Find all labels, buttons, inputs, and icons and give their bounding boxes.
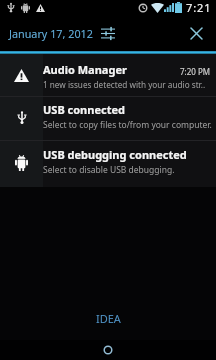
staticText: Audio Manager — [43, 62, 127, 77]
button[interactable]: USB debugging connected — [0, 141, 216, 187]
staticText: January 17, 2012 — [9, 26, 93, 41]
staticText: Select to copy files to/from your comput… — [43, 119, 214, 131]
button[interactable]: USB connected — [0, 97, 216, 140]
staticText: Select to disable USB debugging. — [43, 164, 214, 176]
button[interactable]: Home — [98, 340, 118, 360]
button[interactable]: Audio Manager — [0, 54, 216, 96]
staticText: USB debugging connected — [43, 147, 187, 162]
button[interactable]: Clear all notifications — [184, 21, 208, 45]
staticText: 1 new issues detected with your audio st… — [43, 79, 209, 90]
staticText: 7:20 PM — [180, 66, 211, 77]
staticText: USB connected — [43, 102, 125, 117]
staticText: IDEA — [96, 311, 121, 326]
button[interactable]: Quick settings — [97, 20, 119, 46]
staticText: 7:21 — [186, 0, 212, 15]
